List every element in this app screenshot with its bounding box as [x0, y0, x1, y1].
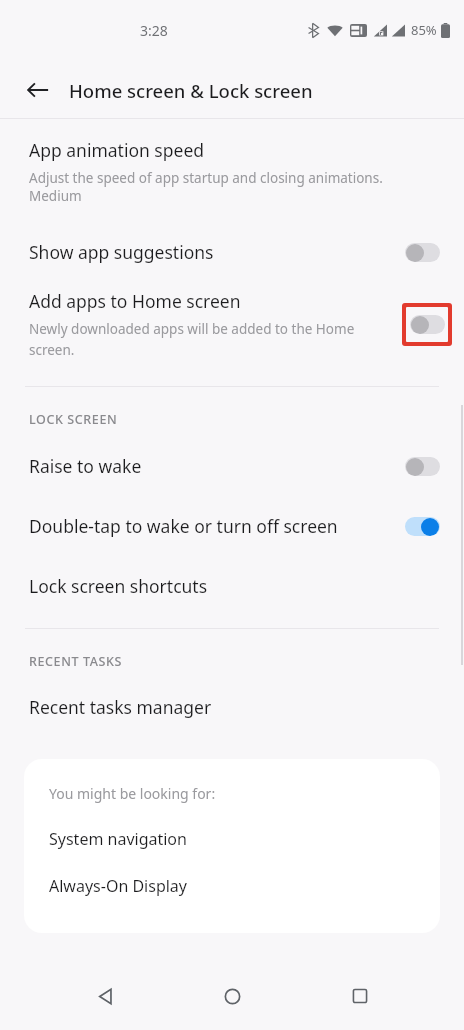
button[interactable]: Back [16, 68, 60, 112]
button[interactable]: Recent tasks manager [0, 687, 464, 727]
button[interactable]: System navigation [24, 820, 440, 858]
staticText: System navigation [49, 828, 187, 850]
staticText: Medium [29, 187, 82, 205]
staticText: Adjust the speed of app startup and clos… [29, 169, 383, 187]
staticText: 3:28 [140, 21, 168, 40]
staticText: Lock screen shortcuts [29, 574, 208, 598]
staticText: You might be looking for: [49, 784, 216, 803]
staticText: Raise to wake [29, 454, 405, 478]
staticText: App animation speed [29, 138, 205, 162]
staticText: Add apps to Home screen [29, 289, 241, 313]
staticText: Recent tasks manager [29, 695, 212, 719]
button[interactable]: App animation speed [0, 138, 464, 205]
staticText: Newly downloaded apps will be added to t… [29, 320, 392, 359]
button[interactable]: Off [410, 315, 445, 334]
button[interactable]: Double-tap to wake or turn off screen [0, 505, 464, 547]
button[interactable]: On [405, 517, 440, 536]
button[interactable]: Raise to wake [0, 445, 464, 487]
staticText: Home screen & Lock screen [69, 78, 313, 103]
button[interactable]: Add apps to Home screen toggle [406, 307, 448, 342]
staticText: RECENT TASKS [29, 653, 122, 670]
button[interactable]: Show app suggestions [0, 229, 464, 275]
button[interactable]: Off [405, 243, 440, 262]
button[interactable]: Home [208, 972, 256, 1020]
button[interactable]: Recent apps [336, 972, 384, 1020]
button[interactable]: Add apps to Home screen [0, 289, 464, 359]
staticText: Double-tap to wake or turn off screen [29, 514, 405, 538]
staticText: Show app suggestions [29, 240, 405, 264]
staticText: Always-On Display [49, 875, 188, 897]
staticText: LOCK SCREEN [29, 411, 118, 428]
button[interactable]: Lock screen shortcuts [0, 565, 464, 607]
button[interactable]: Back [80, 972, 128, 1020]
staticText: 85% [411, 21, 437, 39]
button[interactable]: Always-On Display [24, 867, 440, 905]
button[interactable]: Off [405, 457, 440, 476]
